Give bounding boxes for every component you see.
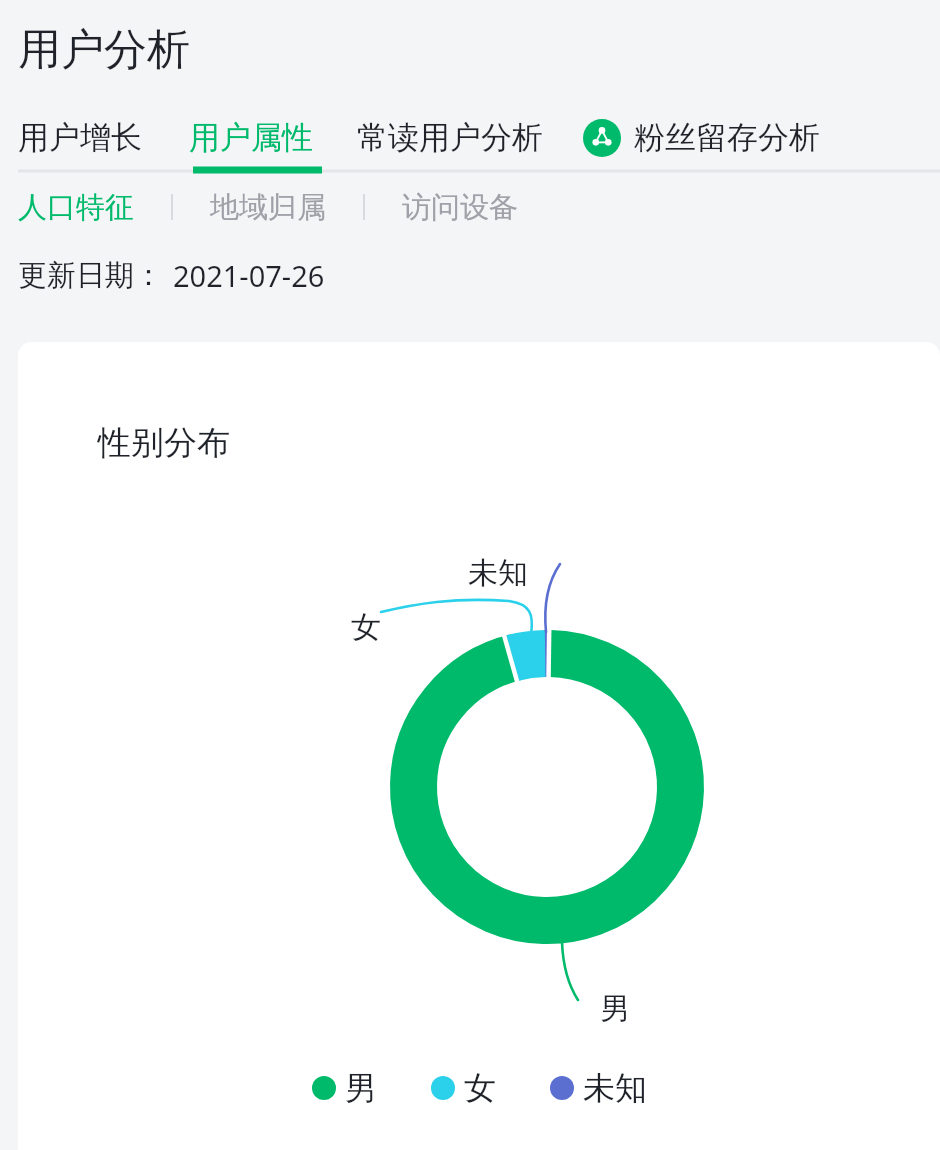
staticText: 性别分布 [98, 422, 230, 464]
button[interactable]: 常读用户分析 [357, 112, 543, 163]
staticText: 女 [464, 1068, 496, 1108]
staticText: 用户属性 [189, 118, 313, 157]
staticText: 未知 [468, 554, 528, 592]
staticText: 访问设备 [402, 189, 518, 226]
button[interactable]: 用户属性 [189, 112, 313, 163]
button[interactable]: 男 [312, 1062, 377, 1114]
staticText: 男 [600, 990, 630, 1028]
button[interactable]: 访问设备 [402, 183, 518, 232]
staticText: 人口特征 [18, 189, 134, 226]
staticText: 用户增长 [18, 118, 142, 157]
staticText: 未知 [583, 1068, 647, 1108]
staticText: 常读用户分析 [357, 118, 543, 157]
staticText: 粉丝留存分析 [634, 118, 820, 157]
button[interactable]: 粉丝留存分析 [583, 119, 621, 157]
staticText: 2021-07-26 [173, 256, 325, 295]
staticText: 地域归属 [210, 189, 326, 226]
button[interactable]: 粉丝留存分析 [583, 118, 820, 157]
button[interactable]: 女 [431, 1062, 496, 1114]
button[interactable]: 未知 [550, 1062, 647, 1114]
staticText: 更新日期： [18, 257, 163, 294]
button[interactable]: 人口特征 [18, 183, 134, 232]
staticText: 男 [345, 1068, 377, 1108]
staticText: 用户分析 [18, 23, 190, 77]
button[interactable]: 用户增长 [18, 112, 142, 163]
button[interactable]: 地域归属 [210, 183, 326, 232]
staticText: 女 [351, 608, 381, 646]
